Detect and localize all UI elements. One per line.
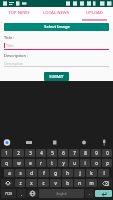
button[interactable]: f: [38, 169, 49, 177]
button[interactable]: u: [69, 159, 79, 167]
staticText: j: [79, 170, 81, 176]
button[interactable]: Enter: [95, 190, 112, 197]
staticText: o: [95, 160, 98, 166]
staticText: z: [19, 180, 22, 186]
button[interactable]: v: [50, 179, 61, 187]
button[interactable]: 0: [102, 149, 112, 157]
staticText: a: [8, 170, 11, 176]
staticText: 7: [73, 150, 76, 156]
button[interactable]: h: [62, 169, 73, 177]
button[interactable]: Change keyboard language: [27, 190, 38, 197]
button[interactable]: l: [98, 169, 109, 177]
staticText: m: [89, 180, 94, 186]
button[interactable]: Title: [4, 42, 109, 50]
button[interactable]: z: [15, 179, 25, 187]
button[interactable]: TOP NEWS: [0, 7, 37, 18]
staticText: 5: [51, 150, 54, 156]
button[interactable]: Backspace: [98, 179, 112, 187]
button[interactable]: m: [86, 179, 97, 187]
staticText: 1: [5, 150, 8, 156]
button[interactable]: 2: [13, 149, 24, 157]
staticText: Title: [6, 43, 14, 48]
staticText: Description: [4, 61, 24, 66]
button[interactable]: c: [38, 179, 49, 187]
staticText: Description :: [4, 53, 29, 58]
staticText: 2: [17, 150, 20, 156]
staticText: .: [89, 191, 90, 196]
button[interactable]: UPLOAD: [75, 7, 113, 18]
staticText: x: [30, 180, 33, 186]
button[interactable]: 7: [69, 149, 79, 157]
staticText: y: [62, 160, 65, 166]
button[interactable]: Select Image: [4, 23, 109, 31]
button[interactable]: ?123: [1, 189, 16, 198]
staticText: t: [51, 160, 53, 166]
button[interactable]: p: [102, 159, 112, 167]
staticText: b: [66, 180, 69, 186]
button[interactable]: SUBMIT: [44, 72, 69, 81]
staticText: 8: [84, 150, 87, 156]
staticText: v: [54, 180, 57, 186]
staticText: c: [42, 180, 45, 186]
button[interactable]: x: [26, 179, 37, 187]
button[interactable]: 9: [91, 149, 101, 157]
button[interactable]: 6: [58, 149, 68, 157]
staticText: f: [43, 170, 45, 176]
staticText: ,: [21, 191, 22, 196]
button[interactable]: o: [91, 159, 101, 167]
button[interactable]: ,: [17, 189, 26, 198]
staticText: q: [5, 160, 8, 166]
staticText: 6: [62, 150, 65, 156]
button[interactable]: k: [86, 169, 97, 177]
button[interactable]: .: [85, 189, 94, 198]
staticText: English: [56, 192, 67, 196]
staticText: e: [29, 160, 32, 166]
button[interactable]: q: [1, 159, 12, 167]
staticText: 4: [40, 150, 43, 156]
button[interactable]: r: [36, 159, 46, 167]
button[interactable]: 1: [1, 149, 12, 157]
button[interactable]: a: [4, 169, 14, 177]
button[interactable]: t: [47, 159, 57, 167]
staticText: 3: [29, 150, 32, 156]
button[interactable]: Description: [4, 60, 109, 67]
button[interactable]: w: [13, 159, 24, 167]
staticText: UPLOAD: [86, 10, 103, 16]
button[interactable]: s: [15, 169, 25, 177]
staticText: LOCAL NEWS: [43, 10, 69, 16]
button[interactable]: b: [62, 179, 73, 187]
button[interactable]: LOCAL NEWS: [37, 7, 75, 18]
staticText: h: [66, 170, 69, 176]
staticText: i: [84, 160, 86, 166]
staticText: 0: [106, 150, 109, 156]
staticText: d: [30, 170, 33, 176]
staticText: SUBMIT: [49, 74, 64, 79]
staticText: ?123: [5, 192, 12, 196]
staticText: w: [17, 160, 21, 166]
button[interactable]: 4: [36, 149, 46, 157]
button[interactable]: y: [58, 159, 68, 167]
staticText: s: [19, 170, 22, 176]
staticText: g: [54, 170, 57, 176]
staticText: p: [106, 160, 109, 166]
button[interactable]: d: [26, 169, 37, 177]
staticText: r: [40, 160, 42, 166]
button[interactable]: 8: [80, 149, 90, 157]
button[interactable]: e: [25, 159, 35, 167]
button[interactable]: j: [74, 169, 85, 177]
staticText: u: [73, 160, 76, 166]
staticText: n: [78, 180, 81, 186]
staticText: l: [103, 170, 105, 176]
staticText: TOP NEWS: [8, 10, 30, 16]
staticText: k: [90, 170, 93, 176]
staticText: Select Image: [44, 24, 70, 30]
staticText: 9: [95, 150, 98, 156]
button[interactable]: g: [50, 169, 61, 177]
button[interactable]: Shift: [1, 179, 14, 187]
button[interactable]: 5: [47, 149, 57, 157]
button[interactable]: n: [74, 179, 85, 187]
button[interactable]: English: [39, 189, 84, 198]
button[interactable]: 3: [25, 149, 35, 157]
staticText: Title :: [4, 35, 15, 40]
button[interactable]: i: [80, 159, 90, 167]
